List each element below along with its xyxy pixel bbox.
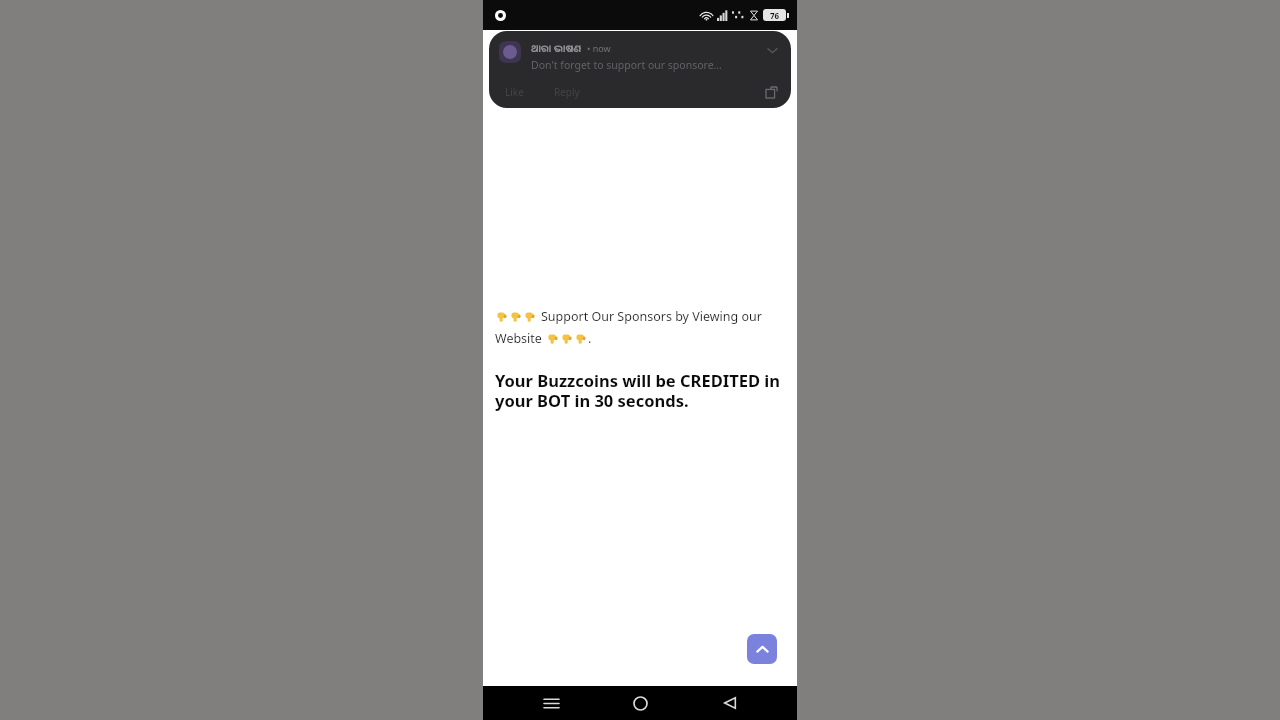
button[interactable]: ଥାରା ଭାଷଣ	[489, 31, 791, 108]
button[interactable]: Expand notification	[763, 41, 781, 59]
staticText: Don't forget to support our sponsore…	[531, 58, 722, 72]
button[interactable]: Home	[618, 686, 662, 720]
button[interactable]: Scroll to top	[747, 634, 777, 664]
staticText: • now	[587, 42, 611, 54]
staticText: Support Our Sponsors by Viewing our	[541, 308, 762, 325]
staticText: Your Buzzcoins will be CREDITED in your …	[495, 369, 785, 412]
staticText: .	[588, 330, 592, 347]
staticText: Website	[495, 330, 546, 347]
staticText: Like	[505, 85, 524, 99]
button[interactable]: Reply	[548, 82, 586, 102]
button[interactable]: Back	[708, 686, 752, 720]
button[interactable]: Like	[499, 82, 530, 102]
button[interactable]: Recent apps	[529, 686, 573, 720]
staticText: Reply	[554, 85, 580, 99]
button[interactable]: Open in app	[761, 82, 781, 102]
staticText: ଥାରା ଭାଷଣ	[531, 41, 582, 55]
staticText: 76	[770, 10, 780, 21]
